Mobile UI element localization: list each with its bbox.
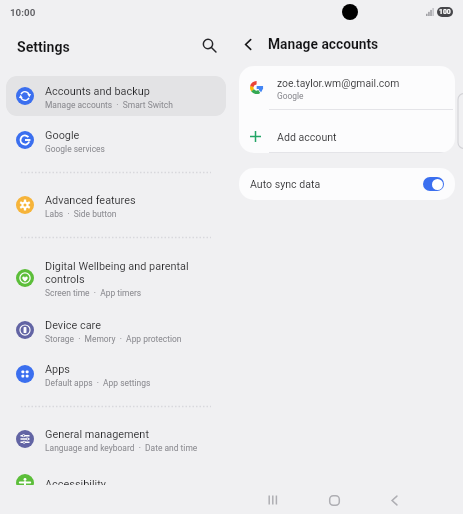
button[interactable]: General management [6,419,226,459]
staticText: Manage accounts · Smart Switch [45,100,173,110]
button[interactable]: Search [196,32,222,58]
button[interactable]: Home [320,486,348,514]
staticText: Screen time · App timers [45,288,142,298]
staticText: Apps [45,363,70,376]
staticText: Device care [45,319,101,332]
button[interactable]: Google [6,120,226,160]
staticText: Accessibility [45,478,106,491]
staticText: Labs · Side button [45,209,117,219]
staticText: Google [277,91,304,101]
staticText: Google [45,129,80,142]
staticText: Auto sync data [250,178,321,190]
staticText: Add account [277,131,337,143]
staticText: Google services [45,144,105,154]
button[interactable]: Back [238,34,379,54]
button[interactable]: Advanced features [6,185,226,225]
button[interactable]: Accounts and backup [6,76,226,116]
button[interactable]: zoe.taylor.wm@gmail.com [239,66,455,109]
button[interactable]: Apps [6,354,226,394]
button[interactable]: Auto sync data [239,168,455,200]
staticText: 100 [439,8,451,16]
staticText: 10:00 [10,7,36,18]
staticText: General management [45,428,149,441]
staticText: Default apps · App settings [45,378,151,388]
button[interactable]: Device care [6,310,226,350]
button[interactable]: Accessibility [6,463,226,503]
staticText: Manage accounts [268,36,379,52]
staticText: Digital Wellbeing and parental [45,260,189,273]
other: Back [238,34,258,54]
staticText: controls [45,273,85,286]
button[interactable]: Add account [239,110,455,153]
staticText: zoe.taylor.wm@gmail.com [277,77,400,89]
button[interactable]: Back [380,486,408,514]
staticText: Settings [17,39,70,56]
staticText: Storage · Memory · App protection [45,334,182,344]
button[interactable]: Recents [259,486,287,514]
staticText: Advanced features [45,194,136,207]
staticText: Accounts and backup [45,85,150,98]
staticText: Language and keyboard · Date and time [45,443,198,453]
button[interactable]: Digital Wellbeing and parental [6,250,226,306]
